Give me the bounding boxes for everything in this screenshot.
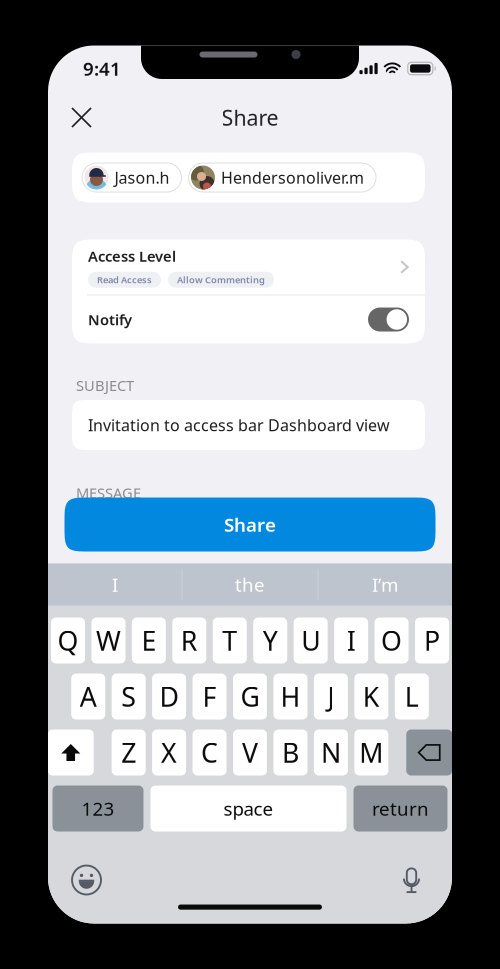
button[interactable]: return [353,785,447,831]
staticText: Invitation to access bar Dashboard view [88,414,390,436]
staticText: H [280,679,300,714]
staticText: W [96,623,121,658]
button[interactable]: N [314,729,348,775]
staticText: Allow Commenting [177,273,265,286]
staticText: B [282,735,299,770]
staticText: the [235,572,265,597]
button[interactable]: O [375,617,409,663]
button[interactable]: Q [51,617,85,663]
button[interactable]: I [48,563,181,605]
button[interactable]: Delete [406,729,452,775]
button[interactable]: Z [112,729,146,775]
button[interactable]: P [415,617,449,663]
staticText: Y [263,623,278,658]
button[interactable]: Jason.h [82,163,181,192]
button[interactable]: K [354,673,388,719]
button[interactable]: Close [65,101,98,134]
button[interactable]: I’m [318,563,451,605]
button[interactable]: F [193,673,227,719]
button[interactable]: X [152,729,186,775]
button[interactable]: Emoji [71,864,102,895]
button[interactable]: G [233,673,267,719]
button[interactable]: D [152,673,186,719]
button[interactable]: Hendersonoliver.m [188,163,376,192]
staticText: J [327,679,334,714]
staticText: K [363,679,380,714]
button[interactable]: Dictation [403,867,420,893]
staticText: 9:41 [83,56,121,81]
button[interactable]: U [294,617,328,663]
staticText: X [161,735,177,770]
button[interactable]: V [233,729,267,775]
staticText: Share [221,103,278,132]
staticText: 123 [81,796,114,821]
button[interactable]: C [193,729,227,775]
staticText: U [301,623,320,658]
staticText: D [160,679,179,714]
button[interactable]: Notify [72,295,425,343]
button[interactable]: Access Level [72,239,425,294]
staticText: Q [57,623,78,658]
button[interactable]: Y [253,617,287,663]
staticText: N [321,735,341,770]
button[interactable]: B [273,729,307,775]
staticText: space [223,796,273,821]
button[interactable]: H [273,673,307,719]
button[interactable]: the [182,563,317,605]
staticText: Z [121,735,136,770]
staticText: T [222,623,237,658]
button[interactable]: J [314,673,348,719]
staticText: I’m [372,572,398,597]
staticText: P [424,623,440,658]
button[interactable]: Share [64,497,435,551]
staticText: MESSAGE [76,483,141,502]
staticText: Access Level [88,246,176,266]
button[interactable]: Shift [48,729,94,775]
staticText: Share [224,512,276,537]
staticText: return [372,796,429,821]
button[interactable]: 123 [52,785,143,831]
staticText: Jason.h [114,167,169,188]
staticText: E [141,623,156,658]
staticText: Notify [88,310,132,329]
staticText: A [80,679,97,714]
button[interactable]: S [112,673,146,719]
button[interactable]: W [91,617,125,663]
staticText: I [347,623,356,658]
staticText: M [359,735,383,770]
staticText: Read Access [97,273,152,286]
staticText: SUBJECT [76,375,134,395]
staticText: O [381,623,402,658]
staticText: Hendersonoliver.m [221,167,364,188]
staticText: F [203,679,217,714]
staticText: G [240,679,259,714]
button[interactable]: A [71,673,105,719]
staticText: V [242,735,258,770]
button[interactable]: I [334,617,368,663]
button[interactable]: space [150,785,346,831]
button[interactable]: T [213,617,247,663]
button[interactable]: R [172,617,206,663]
button[interactable]: E [132,617,166,663]
staticText: C [201,735,218,770]
staticText: S [121,679,136,714]
staticText: R [181,623,198,658]
staticText: I [112,572,118,597]
staticText: L [405,679,419,714]
button[interactable]: M [354,729,388,775]
button[interactable]: L [395,673,429,719]
